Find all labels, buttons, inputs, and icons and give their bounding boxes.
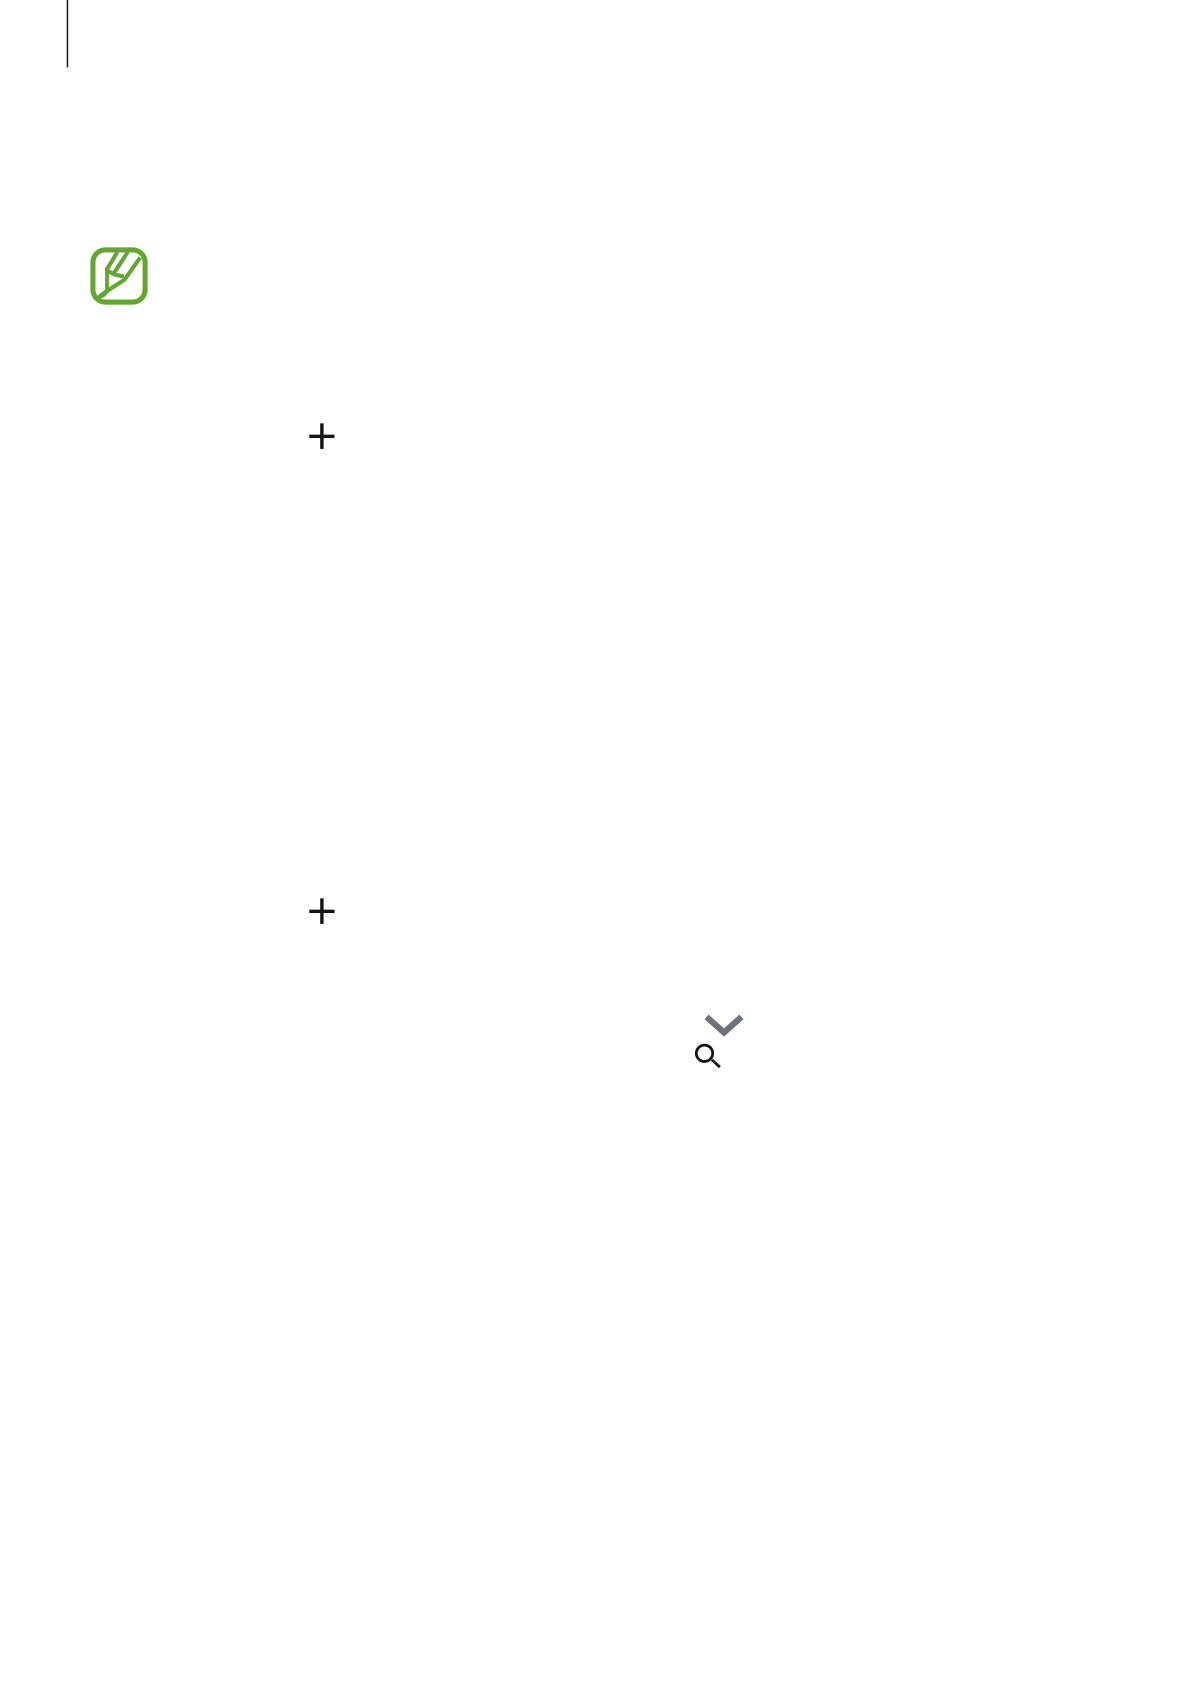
button[interactable]: Add bbox=[309, 898, 335, 925]
button[interactable]: Show more bbox=[703, 1013, 744, 1036]
button[interactable]: Notes bbox=[90, 247, 148, 305]
button[interactable]: Search bbox=[693, 1043, 721, 1070]
button[interactable]: Add bbox=[309, 423, 335, 450]
